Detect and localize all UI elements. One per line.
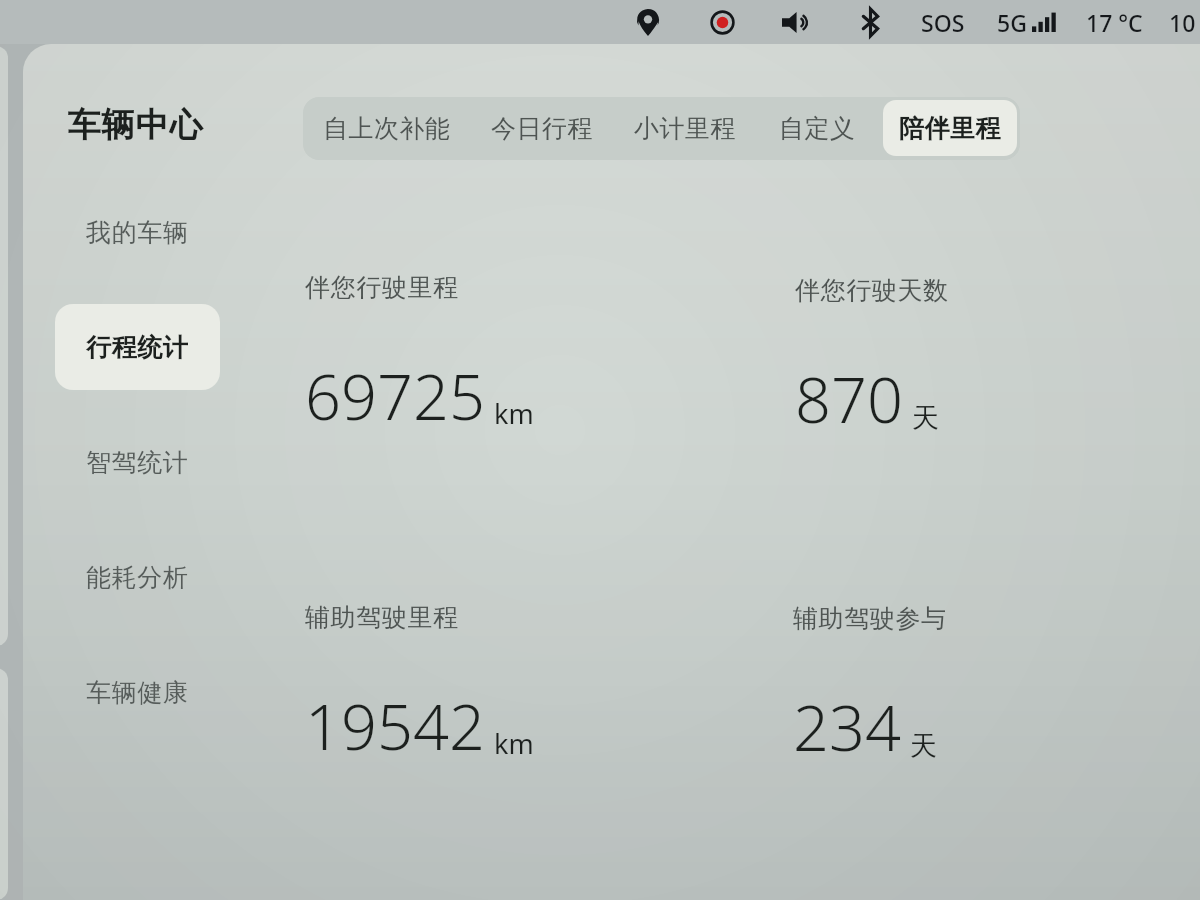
staticText: 5G bbox=[997, 7, 1027, 38]
staticText: 69725 bbox=[305, 353, 485, 439]
staticText: 行程统计 bbox=[86, 332, 189, 363]
button[interactable]: 车辆健康 bbox=[55, 649, 220, 735]
staticText: SOS bbox=[921, 7, 965, 38]
button[interactable]: 陪伴里程 bbox=[883, 100, 1017, 156]
button[interactable]: 能耗分析 bbox=[55, 534, 220, 620]
staticText: 870 bbox=[795, 356, 903, 442]
button[interactable]: 智驾统计 bbox=[55, 419, 220, 505]
staticText: 17 °C bbox=[1086, 7, 1143, 38]
staticText: km bbox=[494, 725, 534, 762]
staticText: 能耗分析 bbox=[86, 562, 189, 593]
staticText: 智驾统计 bbox=[86, 447, 189, 478]
staticText: 19542 bbox=[305, 683, 485, 769]
button[interactable]: Bluetooth bbox=[853, 5, 887, 39]
staticText: 辅助驾驶里程 bbox=[305, 602, 459, 633]
staticText: 伴您行驶里程 bbox=[305, 272, 459, 303]
staticText: 陪伴里程 bbox=[899, 113, 1001, 144]
staticText: 自定义 bbox=[779, 113, 856, 144]
staticText: km bbox=[494, 395, 534, 432]
button[interactable]: 我的车辆 bbox=[55, 189, 220, 275]
button[interactable]: 小计里程 bbox=[620, 97, 750, 160]
button[interactable]: Volume bbox=[779, 5, 813, 39]
button[interactable]: Location bbox=[631, 5, 665, 39]
button[interactable]: 今日行程 bbox=[477, 97, 607, 160]
staticText: 辅助驾驶参与 bbox=[793, 603, 947, 634]
button[interactable]: Recording bbox=[705, 5, 739, 39]
button[interactable]: 自上次补能 bbox=[308, 97, 464, 160]
staticText: 我的车辆 bbox=[86, 217, 189, 248]
staticText: 234 bbox=[793, 684, 901, 770]
button[interactable]: 自定义 bbox=[765, 97, 869, 160]
staticText: 天 bbox=[910, 729, 937, 763]
staticText: 车辆健康 bbox=[86, 677, 189, 708]
staticText: 小计里程 bbox=[634, 113, 736, 144]
button[interactable]: 行程统计 bbox=[55, 304, 220, 390]
staticText: 自上次补能 bbox=[323, 113, 450, 144]
staticText: 伴您行驶天数 bbox=[795, 275, 949, 306]
staticText: 今日行程 bbox=[491, 113, 593, 144]
staticText: 车辆中心 bbox=[67, 104, 203, 146]
staticText: 10 bbox=[1169, 7, 1196, 38]
staticText: 天 bbox=[912, 401, 939, 435]
